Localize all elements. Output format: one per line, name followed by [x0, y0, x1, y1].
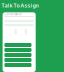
- staticText: Talk To Assign: [1, 2, 38, 9]
- button[interactable]: [4, 53, 31, 57]
- button[interactable]: [4, 43, 31, 47]
- button[interactable]: [4, 58, 31, 62]
- button[interactable]: [4, 63, 31, 67]
- button[interactable]: [4, 48, 31, 52]
- staticText: Conversation: [4, 12, 22, 16]
